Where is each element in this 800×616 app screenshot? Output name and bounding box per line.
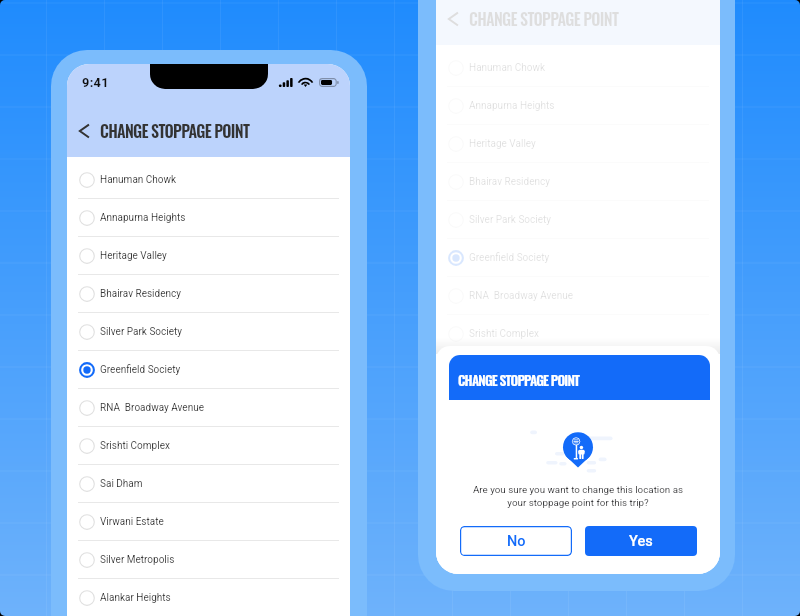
staticText: Silver Metropolis <box>100 554 175 566</box>
button[interactable]: Hanuman Chowk <box>67 161 350 199</box>
staticText: Sai Dham <box>100 478 143 490</box>
staticText: Annapurna Heights <box>469 100 555 112</box>
staticText: Virwani Estate <box>100 516 164 528</box>
staticText: Greenfield Society <box>100 364 181 376</box>
staticText: No <box>507 533 526 550</box>
button[interactable]: RNA Broadway Avenue <box>436 277 720 315</box>
button[interactable]: Annapurna Heights <box>67 199 350 237</box>
button[interactable]: Yes <box>585 526 697 556</box>
staticText: Alankar Heights <box>100 592 171 604</box>
staticText: Bhairav Residency <box>100 288 181 300</box>
staticText: Alankar Heights <box>469 480 540 492</box>
button[interactable]: Srishti Complex <box>436 315 720 353</box>
button[interactable]: Greenfield Society <box>67 351 350 389</box>
staticText: RNA Broadway Avenue <box>100 402 204 414</box>
button[interactable]: Bhairav Residency <box>436 163 720 201</box>
button[interactable]: Alankar Heights <box>67 579 350 616</box>
staticText: Bhairav Residency <box>469 176 550 188</box>
button[interactable]: Silver Metropolis <box>67 541 350 579</box>
button[interactable]: Greenfield Society <box>436 239 720 277</box>
button[interactable]: Virwani Estate <box>436 391 720 429</box>
staticText: Are you sure you want to change this loc… <box>436 484 720 498</box>
button[interactable]: Srishti Complex <box>67 427 350 465</box>
staticText: Hanuman Chowk <box>469 62 546 74</box>
button[interactable]: Silver Park Society <box>67 313 350 351</box>
staticText: CHANGE STOPPAGE POINT <box>100 119 250 143</box>
staticText: Greenfield Society <box>469 252 550 264</box>
staticText: your stoppage point for this trip? <box>436 497 720 511</box>
button[interactable]: Annapurna Heights <box>436 87 720 125</box>
staticText: CHANGE STOPPAGE POINT <box>469 7 619 31</box>
staticText: 9:41 <box>82 75 122 89</box>
staticText: Srishti Complex <box>469 328 539 340</box>
button[interactable]: Back <box>73 118 95 144</box>
button[interactable]: Heritage Valley <box>67 237 350 275</box>
staticText: Srishti Complex <box>100 440 170 452</box>
staticText: CHANGE STOPPAGE POINT <box>458 370 580 390</box>
button[interactable]: Sai Dham <box>436 353 720 391</box>
button[interactable]: Silver Metropolis <box>436 429 720 467</box>
staticText: Heritage Valley <box>100 250 167 262</box>
staticText: Sai Dham <box>469 366 512 378</box>
staticText: Annapurna Heights <box>100 212 186 224</box>
staticText: Heritage Valley <box>469 138 536 150</box>
button[interactable]: Sai Dham <box>67 465 350 503</box>
button[interactable]: Silver Park Society <box>436 201 720 239</box>
button[interactable]: Bhairav Residency <box>67 275 350 313</box>
button[interactable]: Virwani Estate <box>67 503 350 541</box>
staticText: RNA Broadway Avenue <box>469 290 573 302</box>
staticText: Silver Park Society <box>100 326 182 338</box>
button[interactable]: RNA Broadway Avenue <box>67 389 350 427</box>
staticText: Yes <box>629 533 653 550</box>
staticText: Hanuman Chowk <box>100 174 177 186</box>
button[interactable]: No <box>460 526 572 556</box>
button[interactable]: Back <box>442 6 464 32</box>
button[interactable]: Alankar Heights <box>436 467 720 505</box>
staticText: Silver Park Society <box>469 214 551 226</box>
